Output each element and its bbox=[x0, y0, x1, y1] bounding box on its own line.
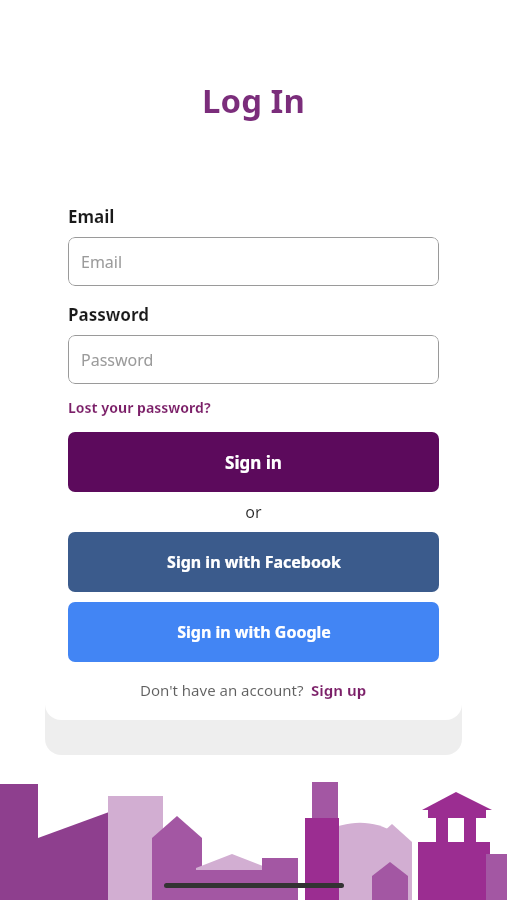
button[interactable]: Sign in bbox=[68, 432, 439, 492]
staticText: Sign in with Google bbox=[177, 621, 331, 643]
button[interactable]: Email bbox=[68, 237, 439, 286]
staticText: Password bbox=[81, 349, 154, 371]
staticText: Email bbox=[81, 251, 123, 273]
staticText: or bbox=[68, 501, 439, 523]
button[interactable]: Sign in with Facebook bbox=[68, 532, 439, 592]
staticText: Don't have an account? bbox=[140, 680, 304, 700]
button[interactable]: Sign in with Google bbox=[68, 602, 439, 662]
staticText: Password bbox=[68, 303, 149, 326]
staticText: Sign in bbox=[225, 451, 282, 474]
staticText: Log In bbox=[202, 78, 305, 123]
staticText: Sign in with Facebook bbox=[167, 551, 341, 573]
button[interactable]: Password bbox=[68, 335, 439, 384]
button[interactable]: Sign up bbox=[311, 680, 367, 700]
button[interactable]: Lost your password? bbox=[68, 398, 211, 417]
staticText: Email bbox=[68, 205, 115, 228]
staticText: Lost your password? bbox=[68, 398, 211, 417]
staticText: Sign up bbox=[311, 680, 367, 700]
